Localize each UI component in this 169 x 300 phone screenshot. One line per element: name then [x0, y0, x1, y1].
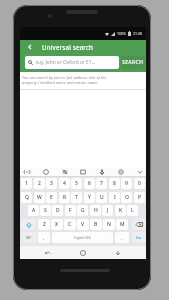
staticText: J — [107, 207, 109, 214]
button[interactable]: 7 — [96, 178, 107, 189]
button[interactable]: W — [34, 192, 45, 203]
button[interactable]: J — [102, 205, 113, 216]
button[interactable] — [80, 250, 86, 256]
staticText: Q — [25, 194, 29, 201]
button[interactable]: N — [103, 219, 115, 230]
button[interactable]: 1 — [21, 178, 32, 189]
staticText: D — [56, 207, 60, 214]
button[interactable]: F — [65, 205, 76, 216]
staticText: T — [75, 194, 78, 201]
staticText: S — [44, 207, 47, 214]
button[interactable] — [27, 44, 33, 50]
staticText: B — [94, 221, 98, 228]
button[interactable]: 9 — [121, 178, 132, 189]
staticText: 8 — [113, 180, 116, 187]
button[interactable]: L — [127, 205, 138, 216]
staticText: 21:38 — [133, 31, 142, 36]
button[interactable]: 4 — [59, 178, 70, 189]
button[interactable]: I — [109, 192, 120, 203]
button[interactable]: !#1 — [21, 232, 37, 243]
staticText: E — [50, 194, 53, 201]
staticText: 0 — [138, 180, 141, 187]
button[interactable] — [21, 219, 36, 230]
staticText: 6 — [88, 180, 91, 187]
staticText: L — [131, 207, 134, 214]
staticText: 1 — [25, 180, 28, 187]
staticText: X — [55, 221, 59, 228]
button[interactable]: SEARCH — [121, 56, 145, 69]
staticText: M — [120, 221, 125, 228]
button[interactable] — [99, 169, 105, 175]
staticText: SEARCH — [122, 59, 144, 66]
staticText: V — [81, 221, 85, 228]
button[interactable]: 5 — [71, 178, 82, 189]
staticText: Y — [88, 194, 91, 201]
staticText: , — [43, 235, 45, 241]
button[interactable]: B — [90, 219, 102, 230]
button[interactable]: 8 — [109, 178, 120, 189]
staticText: G — [81, 207, 85, 214]
staticText: Universal search — [42, 43, 94, 51]
button[interactable]: , — [38, 232, 50, 243]
staticText: Go — [136, 235, 142, 240]
staticText: 5 — [75, 180, 78, 187]
button[interactable]: U — [96, 192, 107, 203]
staticText: O — [125, 194, 129, 201]
button[interactable]: A — [28, 205, 39, 216]
staticText: 9 — [125, 180, 128, 187]
button[interactable]: M — [116, 219, 128, 230]
staticText: A — [32, 207, 36, 214]
button[interactable]: G — [77, 205, 88, 216]
button[interactable]: R — [59, 192, 70, 203]
button[interactable]: Go — [132, 232, 146, 243]
button[interactable] — [80, 169, 86, 175]
staticText: 2 — [38, 180, 41, 187]
staticText: You can search by part or full address, … — [22, 75, 107, 80]
staticText: H — [94, 207, 98, 214]
button[interactable]: S — [40, 205, 51, 216]
staticText: . — [121, 235, 123, 241]
staticText: N — [107, 221, 111, 228]
staticText: R — [63, 194, 67, 201]
button[interactable]: E — [46, 192, 57, 203]
button[interactable]: 6 — [84, 178, 95, 189]
staticText: 4 — [63, 180, 66, 187]
button[interactable]: Q — [21, 192, 32, 203]
staticText: e.g. John or Oxford or E1... — [36, 59, 96, 66]
button[interactable] — [24, 169, 30, 175]
button[interactable]: C — [64, 219, 76, 230]
button[interactable]: Z — [38, 219, 50, 230]
staticText: I — [114, 194, 116, 201]
button[interactable] — [45, 250, 51, 256]
button[interactable]: 2 — [34, 178, 45, 189]
button[interactable]: K — [115, 205, 126, 216]
button[interactable]: P — [134, 192, 145, 203]
button[interactable]: X — [51, 219, 63, 230]
button[interactable]: D — [52, 205, 63, 216]
staticText: P — [138, 194, 142, 201]
button[interactable]: O — [121, 192, 132, 203]
button[interactable] — [132, 219, 146, 230]
staticText: English (US) — [74, 236, 91, 240]
button[interactable]: . — [115, 232, 129, 243]
button[interactable]: e.g. John or Oxford or E1... — [25, 56, 119, 69]
staticText: U — [100, 194, 104, 201]
button[interactable] — [115, 250, 121, 256]
button[interactable]: T — [71, 192, 82, 203]
button[interactable]: V — [77, 219, 89, 230]
staticText: K — [119, 207, 123, 214]
staticText: !#1 — [26, 235, 32, 240]
button[interactable] — [137, 169, 143, 175]
button[interactable] — [62, 169, 68, 175]
button[interactable]: 3 — [46, 178, 57, 189]
staticText: 7 — [100, 180, 103, 187]
button[interactable]: Y — [84, 192, 95, 203]
staticText: Z — [43, 221, 46, 228]
button[interactable]: 0 — [134, 178, 145, 189]
button[interactable]: H — [90, 205, 101, 216]
button[interactable] — [43, 169, 49, 175]
staticText: 3 — [50, 180, 53, 187]
staticText: W — [37, 194, 42, 201]
button[interactable]: English (US) — [52, 232, 113, 243]
button[interactable] — [118, 169, 124, 175]
